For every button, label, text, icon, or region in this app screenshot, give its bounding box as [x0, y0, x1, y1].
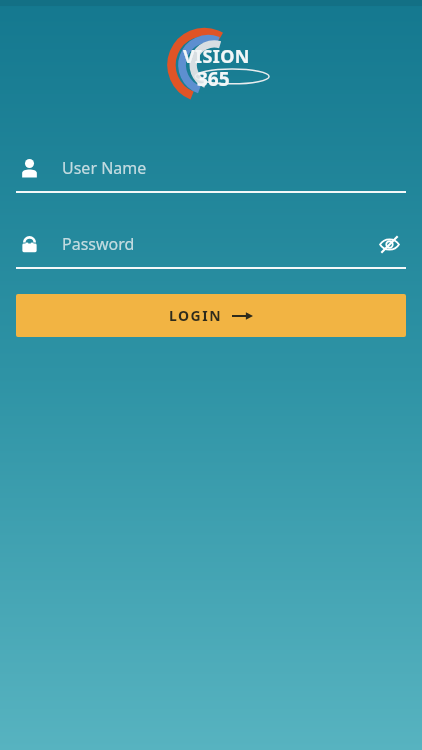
button[interactable]: Password field [16, 225, 406, 269]
staticText: VISION [183, 44, 250, 69]
button[interactable]: User name field [16, 149, 406, 193]
other: User name field [19, 158, 40, 179]
staticText: Password [62, 233, 372, 255]
button[interactable]: LOGIN [16, 294, 406, 337]
staticText: 365 [197, 66, 230, 92]
staticText: LOGIN [169, 306, 223, 325]
other: Password field [19, 234, 40, 255]
staticText: User Name [62, 157, 406, 179]
button[interactable]: Show password [372, 227, 406, 261]
